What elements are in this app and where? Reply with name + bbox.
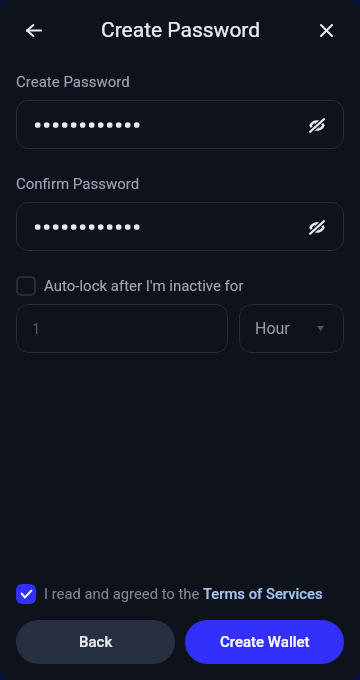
staticText: 1 — [32, 320, 41, 338]
button[interactable]: Back — [18, 14, 50, 46]
button[interactable]: Auto-lock toggle — [16, 276, 36, 296]
button[interactable]: Back — [16, 620, 175, 664]
button[interactable]: Show password — [16, 202, 344, 251]
button[interactable]: Show password — [304, 214, 330, 240]
staticText: Create Password — [101, 18, 261, 43]
button[interactable]: Create Wallet — [185, 620, 344, 664]
button[interactable]: Show password — [16, 100, 344, 149]
button[interactable]: 1 — [16, 304, 228, 353]
staticText: I read and agreed to the — [44, 585, 203, 602]
button[interactable]: Agree to terms — [16, 584, 36, 604]
button[interactable]: I read and agreed to the — [44, 585, 323, 602]
staticText: Back — [79, 633, 113, 651]
button[interactable]: Terms of Services — [203, 585, 323, 602]
button[interactable]: Unit dropdown — [239, 304, 344, 353]
staticText: Confirm Password — [16, 175, 140, 193]
button[interactable]: Auto-lock after I'm inactive for — [44, 277, 244, 295]
staticText: Create Wallet — [220, 633, 310, 651]
button[interactable]: Close — [310, 14, 342, 46]
staticText: Hour — [255, 319, 290, 338]
button[interactable]: Show password — [304, 112, 330, 138]
staticText: Create Password — [16, 73, 130, 91]
